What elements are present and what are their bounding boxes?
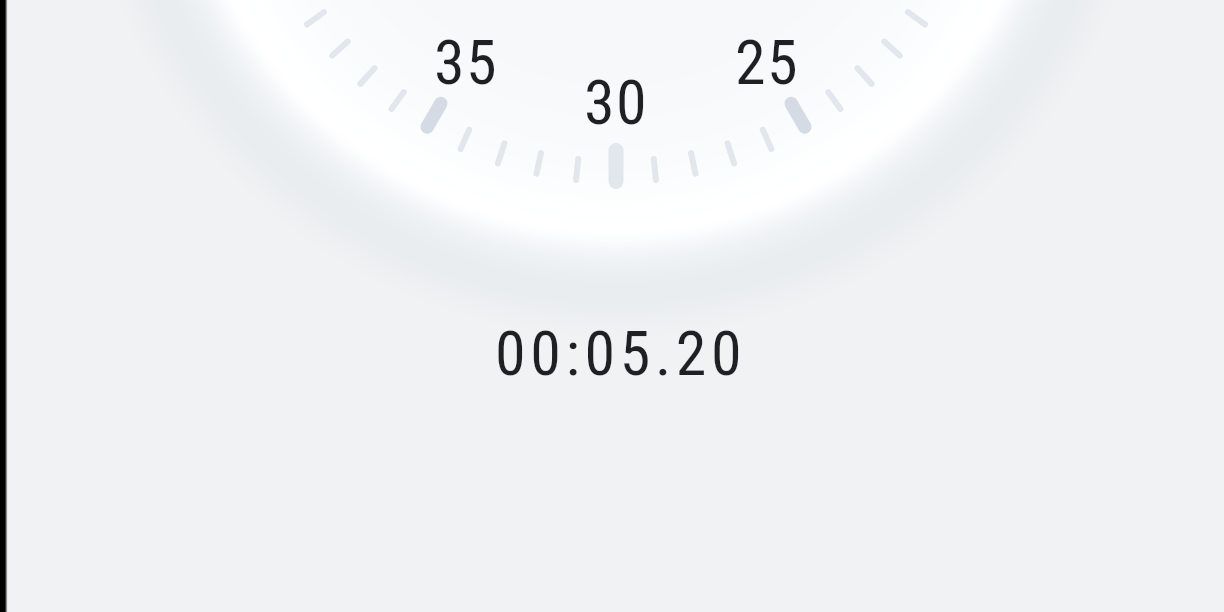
staticText: 35 [434,26,499,99]
staticText: 00:05.20 [495,317,747,390]
staticText: 30 [584,66,649,139]
staticText: 25 [735,26,800,99]
